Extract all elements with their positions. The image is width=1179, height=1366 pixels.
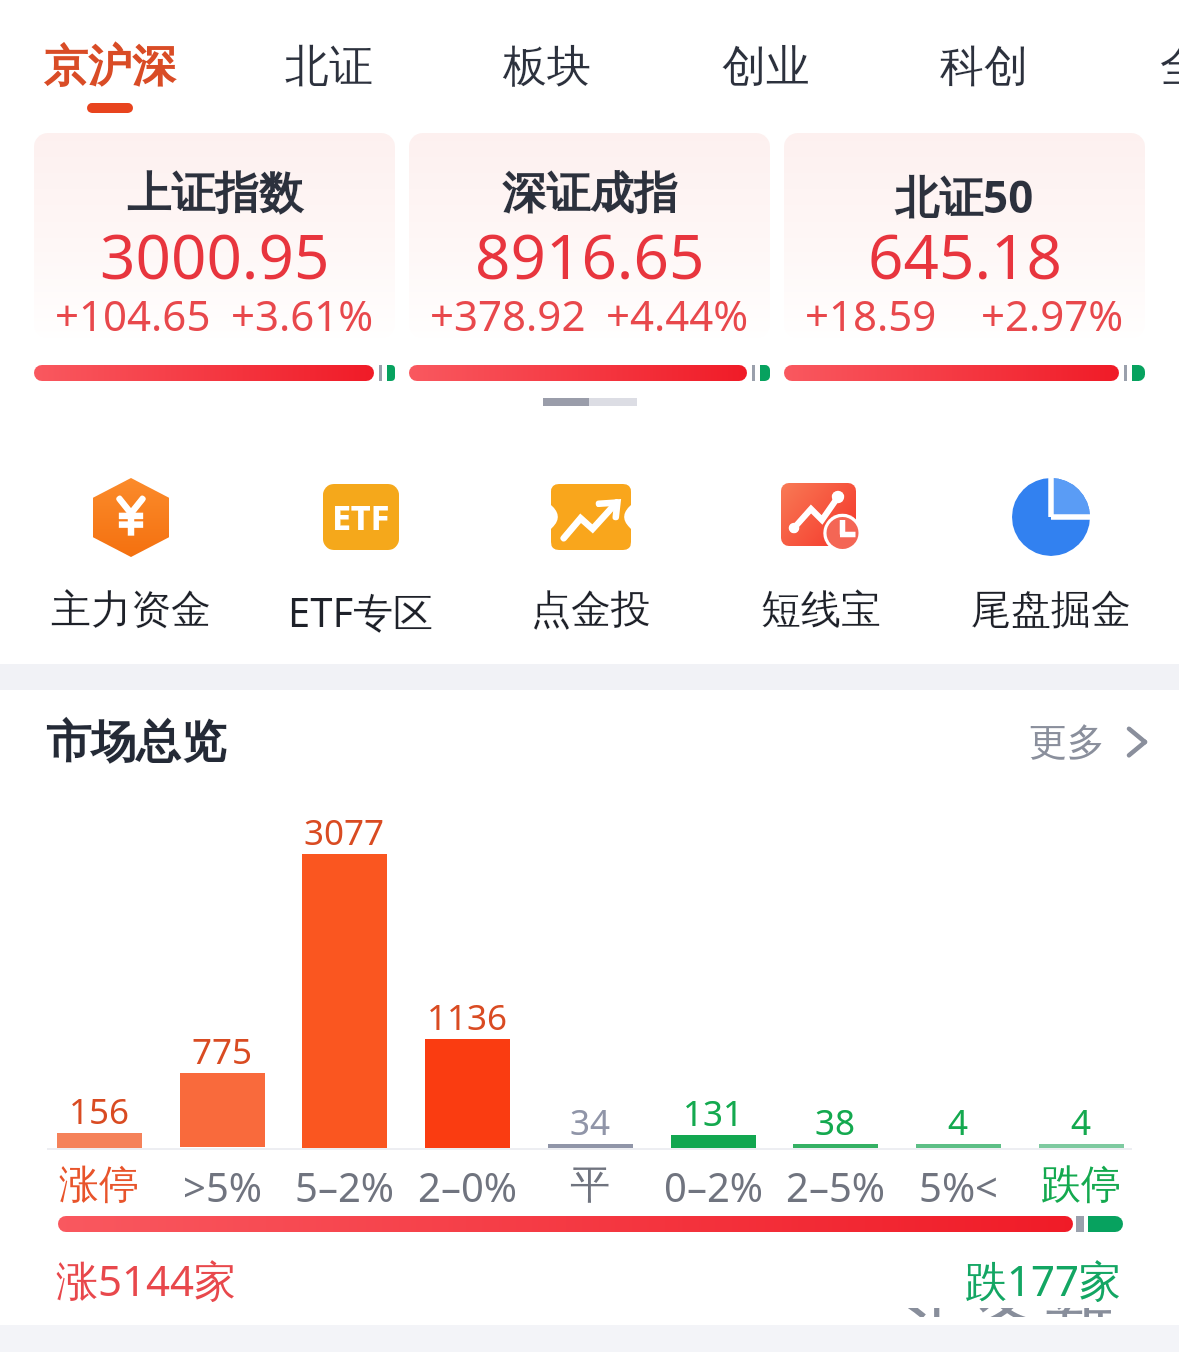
staticText: 645.18 bbox=[868, 213, 1062, 297]
staticText: 北证50 bbox=[895, 166, 1034, 226]
staticText: 点金投 bbox=[531, 584, 651, 634]
staticText: >5% bbox=[183, 1159, 262, 1213]
button[interactable] bbox=[34, 133, 395, 338]
staticText: 全 bbox=[1160, 39, 1179, 94]
staticText: +104.65 bbox=[55, 286, 211, 343]
staticText: 涨停 bbox=[59, 1159, 139, 1209]
staticText: 34 bbox=[570, 1098, 611, 1146]
staticText: 2–5% bbox=[786, 1159, 885, 1213]
button[interactable]: 京沪深 bbox=[44, 0, 176, 125]
staticText: 跌停 bbox=[1041, 1159, 1121, 1209]
staticText: 5–2% bbox=[295, 1159, 394, 1213]
staticText: 上证指数 bbox=[127, 166, 303, 221]
staticText: +18.59 bbox=[805, 286, 937, 343]
staticText: 4 bbox=[948, 1098, 969, 1146]
staticText: 板块 bbox=[503, 39, 591, 94]
button[interactable]: 科创 bbox=[940, 0, 1028, 125]
staticText: 创业 bbox=[722, 39, 810, 94]
staticText: 短线宝 bbox=[761, 584, 881, 634]
button[interactable]: ETF bbox=[246, 472, 476, 639]
button[interactable]: 板块 bbox=[503, 0, 591, 125]
staticText: 涨5144家 bbox=[56, 1251, 237, 1308]
staticText: 更多 bbox=[1029, 718, 1105, 766]
staticText: 1136 bbox=[427, 993, 508, 1041]
staticText: 5%< bbox=[919, 1159, 998, 1213]
staticText: 尾盘掘金 bbox=[971, 584, 1131, 634]
staticText: 头条新闻 bbox=[898, 1308, 1126, 1317]
staticText: 深证成指 bbox=[502, 166, 678, 221]
staticText: 3000.95 bbox=[100, 213, 330, 297]
button[interactable]: 主力资金 bbox=[16, 472, 246, 634]
staticText: 科创 bbox=[940, 39, 1028, 94]
button[interactable]: 创业 bbox=[722, 0, 810, 125]
staticText: 主力资金 bbox=[51, 584, 211, 634]
staticText: 3077 bbox=[304, 808, 385, 856]
button[interactable]: 更多 bbox=[1029, 718, 1147, 766]
staticText: ETF bbox=[332, 494, 390, 540]
staticText: 北证 bbox=[285, 39, 373, 94]
button[interactable] bbox=[409, 133, 770, 338]
staticText: 0–2% bbox=[664, 1159, 763, 1213]
staticText: +3.61% bbox=[231, 286, 374, 343]
staticText: +4.44% bbox=[606, 286, 749, 343]
staticText: 京沪深 bbox=[44, 39, 176, 94]
staticText: 跌177家 bbox=[700, 1251, 1121, 1308]
button[interactable]: 尾盘掘金 bbox=[936, 472, 1166, 634]
staticText: +378.92 bbox=[430, 286, 586, 343]
button[interactable]: 北证 bbox=[285, 0, 373, 125]
staticText: 8916.65 bbox=[475, 213, 705, 297]
staticText: 市场总览 bbox=[46, 714, 226, 771]
staticText: 775 bbox=[192, 1027, 253, 1075]
staticText: 131 bbox=[683, 1089, 744, 1137]
staticText: 156 bbox=[69, 1087, 130, 1135]
button[interactable]: 全 bbox=[1160, 0, 1179, 125]
button[interactable]: 点金投 bbox=[476, 472, 706, 634]
button[interactable] bbox=[784, 133, 1145, 338]
staticText: ETF专区 bbox=[288, 584, 434, 639]
button[interactable]: 短线宝 bbox=[706, 472, 936, 634]
staticText: 平 bbox=[570, 1159, 610, 1209]
staticText: +2.97% bbox=[981, 286, 1124, 343]
button[interactable]: 市场总览 bbox=[46, 714, 226, 771]
staticText: 38 bbox=[815, 1098, 856, 1146]
staticText: 2–0% bbox=[418, 1159, 517, 1213]
staticText: 4 bbox=[1071, 1098, 1092, 1146]
